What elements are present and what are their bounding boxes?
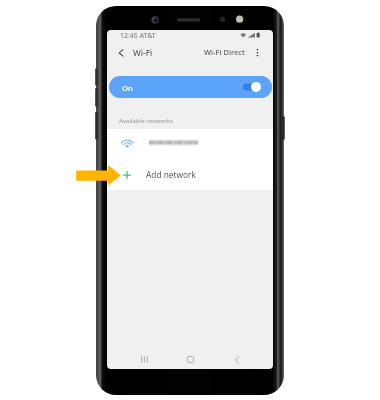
button[interactable]: Recent apps — [134, 350, 154, 369]
button[interactable]: Home — [180, 350, 200, 369]
button[interactable]: On — [109, 76, 272, 98]
staticText: Available networks — [119, 116, 173, 124]
button[interactable]: Back — [227, 350, 247, 369]
button[interactable]: Wi-Fi Direct — [204, 47, 245, 57]
button[interactable]: Add network — [107, 158, 273, 190]
staticText: On — [122, 83, 133, 93]
button[interactable]: Wi-Fi — [133, 47, 153, 58]
button[interactable] — [107, 129, 273, 157]
button[interactable]: Back — [114, 46, 127, 59]
staticText: 12:45 AT&T — [120, 31, 156, 40]
staticText: Add network — [146, 169, 196, 180]
button[interactable]: More options — [252, 47, 263, 58]
